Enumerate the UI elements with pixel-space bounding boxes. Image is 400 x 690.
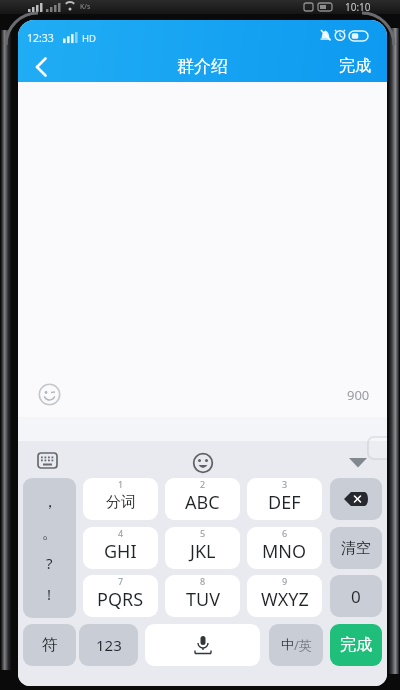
staticText: HD bbox=[82, 32, 96, 45]
staticText: 中 bbox=[281, 636, 294, 652]
button[interactable]: 完成 bbox=[330, 624, 382, 666]
button[interactable]: 123 bbox=[79, 624, 138, 666]
button[interactable] bbox=[145, 624, 260, 666]
staticText: 4 bbox=[118, 527, 124, 539]
button[interactable]: 4 bbox=[83, 527, 158, 569]
staticText: 12:33 bbox=[27, 31, 54, 45]
staticText: 符 bbox=[42, 635, 58, 655]
staticText: 10:10 bbox=[345, 0, 371, 14]
staticText: 5 bbox=[200, 527, 206, 539]
staticText: K/s bbox=[80, 2, 91, 12]
button[interactable] bbox=[338, 446, 378, 476]
staticText: ， bbox=[42, 492, 58, 512]
button[interactable]: 7 bbox=[83, 575, 158, 617]
staticText: 。 bbox=[42, 523, 58, 543]
staticText: ABC bbox=[185, 490, 220, 515]
button[interactable]: 中 bbox=[269, 624, 323, 666]
staticText: 0 bbox=[351, 585, 361, 608]
staticText: ? bbox=[46, 553, 53, 573]
button[interactable]: 8 bbox=[165, 575, 240, 617]
staticText: 8 bbox=[200, 575, 206, 587]
button[interactable]: 9 bbox=[247, 575, 322, 617]
staticText: WXYZ bbox=[261, 587, 309, 612]
button[interactable]: 1 bbox=[83, 478, 158, 520]
staticText: 完成 bbox=[340, 635, 372, 655]
staticText: 9 bbox=[282, 575, 288, 587]
button[interactable] bbox=[185, 446, 221, 476]
button[interactable]: 2 bbox=[165, 478, 240, 520]
staticText: 群介绍 bbox=[177, 56, 228, 77]
staticText: MNO bbox=[262, 539, 307, 564]
staticText: ! bbox=[47, 584, 52, 604]
button[interactable]: ， bbox=[23, 478, 76, 618]
button[interactable] bbox=[30, 446, 66, 476]
staticText: 完成 bbox=[339, 56, 371, 76]
staticText: 1 bbox=[118, 478, 124, 490]
button[interactable]: 6 bbox=[247, 527, 322, 569]
staticText: PQRS bbox=[97, 587, 144, 612]
staticText: 分词 bbox=[106, 493, 136, 512]
button[interactable] bbox=[330, 478, 382, 520]
button[interactable]: 0 bbox=[330, 575, 382, 617]
staticText: /英 bbox=[294, 636, 312, 654]
staticText: 清空 bbox=[341, 539, 371, 558]
staticText: JKL bbox=[190, 539, 216, 564]
button[interactable]: 3 bbox=[247, 478, 322, 520]
staticText: 123 bbox=[96, 635, 122, 655]
staticText: 3 bbox=[282, 478, 288, 490]
staticText: 2 bbox=[200, 478, 206, 490]
button[interactable]: 完成 bbox=[328, 50, 382, 82]
button[interactable]: 清空 bbox=[330, 527, 382, 569]
button[interactable] bbox=[38, 383, 61, 406]
staticText: DEF bbox=[268, 490, 301, 515]
staticText: 900 bbox=[347, 386, 370, 404]
button[interactable]: 符 bbox=[23, 624, 76, 666]
staticText: 6 bbox=[282, 527, 288, 539]
staticText: 7 bbox=[118, 575, 124, 587]
button[interactable] bbox=[24, 52, 60, 82]
button[interactable]: 5 bbox=[165, 527, 240, 569]
staticText: GHI bbox=[104, 539, 137, 564]
staticText: TUV bbox=[186, 587, 220, 612]
